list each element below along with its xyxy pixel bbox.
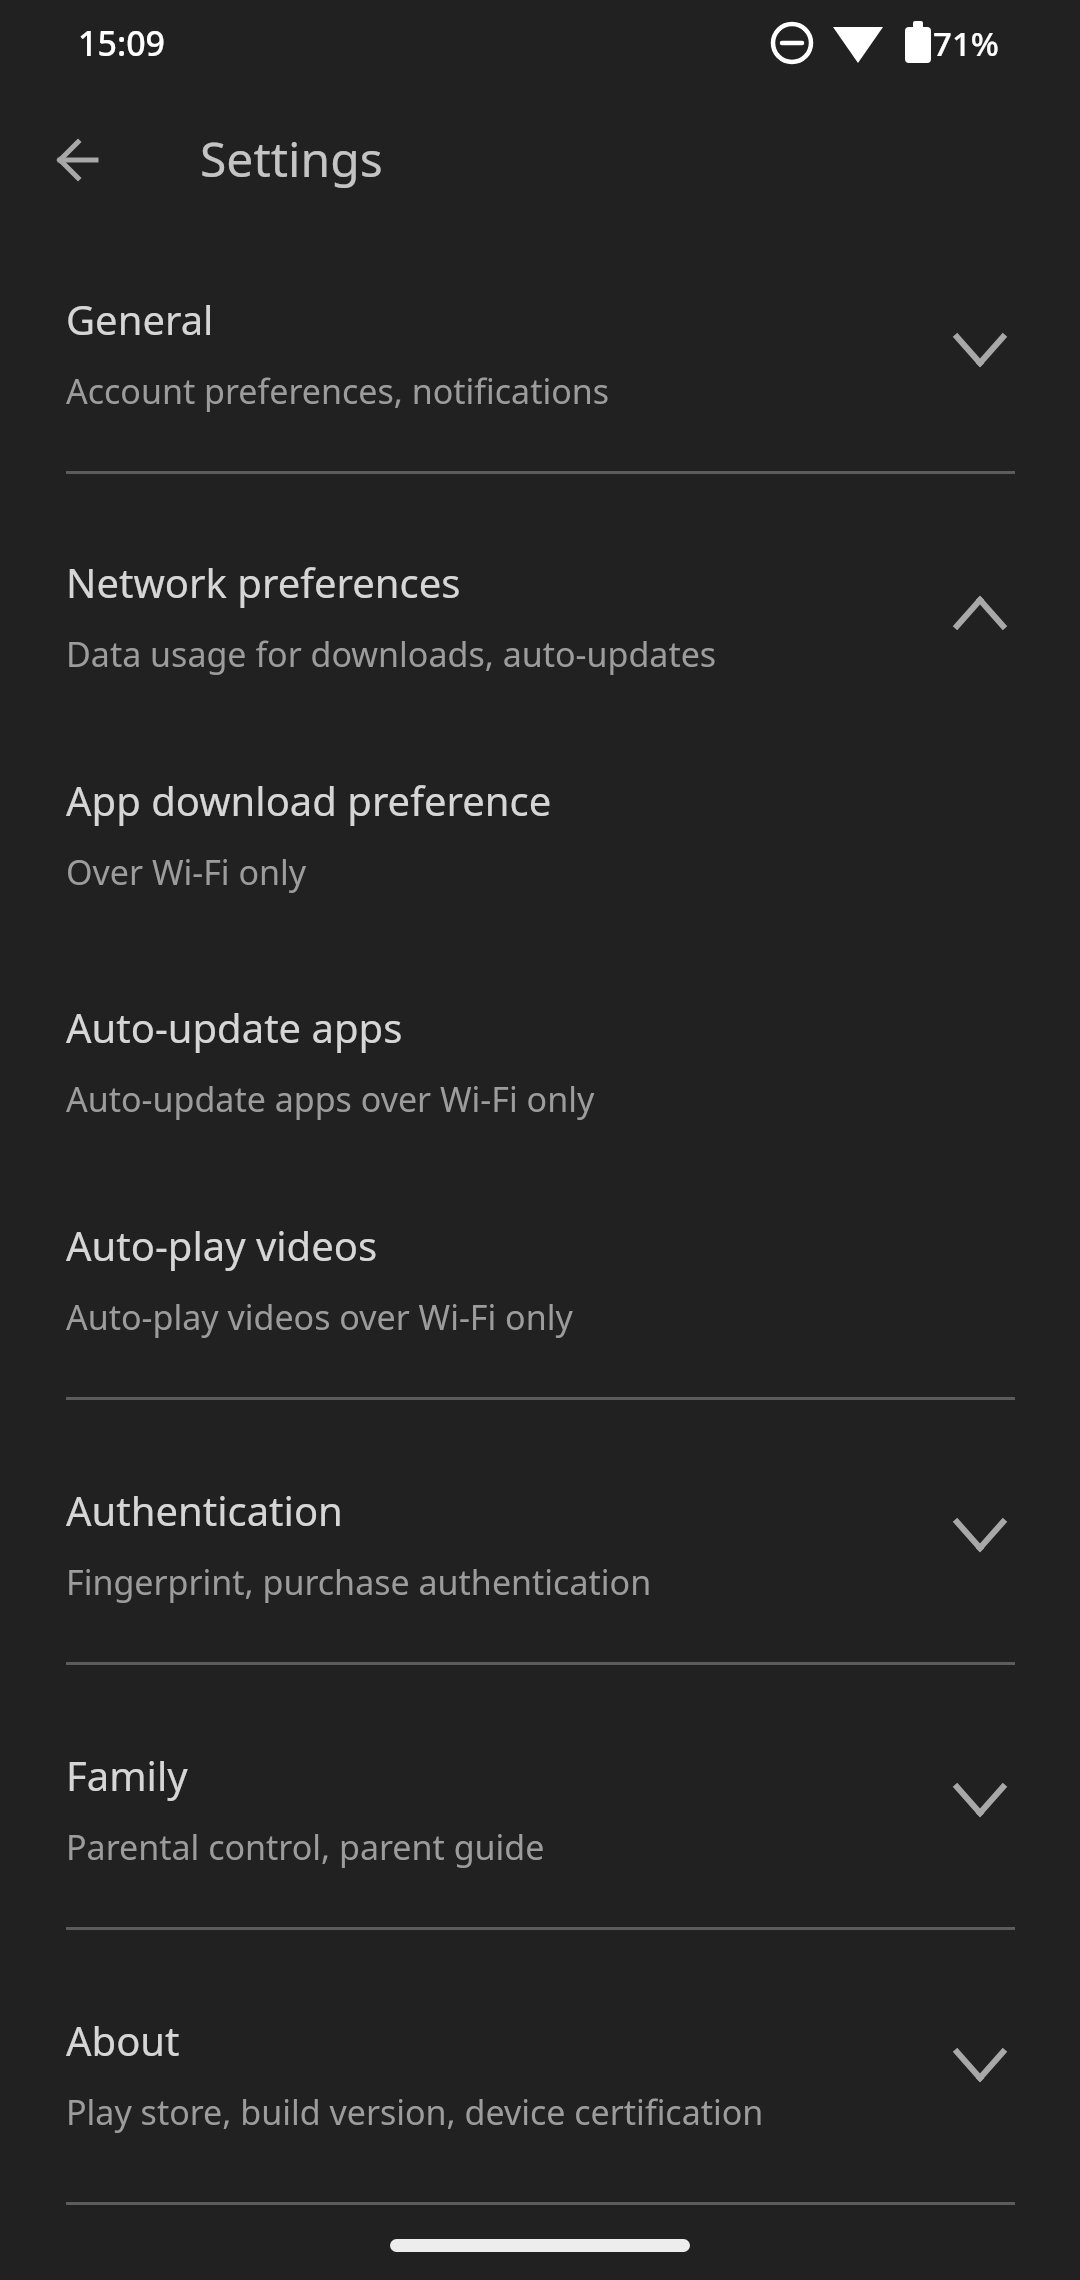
staticText: Over Wi-Fi only xyxy=(66,849,307,895)
button[interactable] xyxy=(0,735,1080,925)
staticText: Parental control, parent guide xyxy=(66,1824,545,1870)
staticText: Family xyxy=(66,1748,188,1802)
staticText: 15:09 xyxy=(78,20,166,66)
button[interactable] xyxy=(0,1971,1080,2171)
staticText: Fingerprint, purchase authentication xyxy=(66,1559,652,1605)
staticText: Auto-update apps xyxy=(66,1000,403,1054)
staticText: About xyxy=(66,2013,180,2067)
staticText: Play store, build version, device certif… xyxy=(66,2089,764,2135)
staticText: App download preference xyxy=(66,773,552,827)
button[interactable] xyxy=(0,1440,1080,1640)
staticText: Account preferences, notifications xyxy=(66,368,610,414)
staticText: Data usage for downloads, auto-updates xyxy=(66,631,717,677)
button[interactable] xyxy=(0,962,1080,1152)
button[interactable] xyxy=(0,1706,1080,1906)
staticText: Auto-play videos over Wi-Fi only xyxy=(66,1294,573,1340)
staticText: 71% xyxy=(933,21,999,66)
button[interactable] xyxy=(0,515,1080,715)
button[interactable] xyxy=(0,1180,1080,1370)
staticText: General xyxy=(66,292,214,346)
button[interactable] xyxy=(0,250,1080,450)
staticText: Network preferences xyxy=(66,555,461,609)
staticText: Authentication xyxy=(66,1483,343,1537)
staticText: Auto-update apps over Wi-Fi only xyxy=(66,1076,595,1122)
button[interactable]: Back xyxy=(30,112,126,208)
staticText: Auto-play videos xyxy=(66,1218,378,1272)
staticText: Settings xyxy=(200,126,383,191)
